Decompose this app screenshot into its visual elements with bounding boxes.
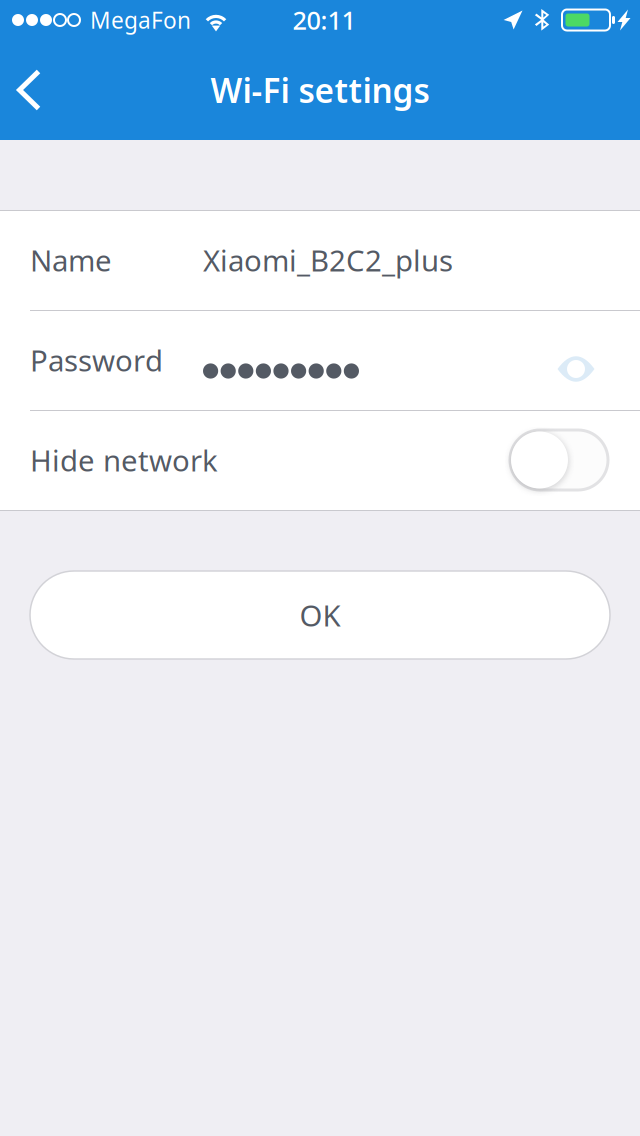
- staticText: Wi-Fi settings: [210, 68, 429, 112]
- staticText: MegaFon: [90, 5, 191, 35]
- staticText: Hide network: [30, 440, 218, 479]
- button[interactable]: Back: [0, 40, 58, 140]
- staticText: OK: [299, 595, 340, 634]
- staticText: Password: [30, 340, 163, 379]
- staticText: Xiaomi_B2C2_plus: [203, 240, 453, 279]
- button[interactable]: Hide network: [510, 430, 608, 490]
- button[interactable]: OK: [30, 571, 610, 659]
- button[interactable]: Show password: [538, 322, 614, 398]
- staticText: Name: [30, 240, 112, 279]
- staticText: 20:11: [292, 3, 355, 37]
